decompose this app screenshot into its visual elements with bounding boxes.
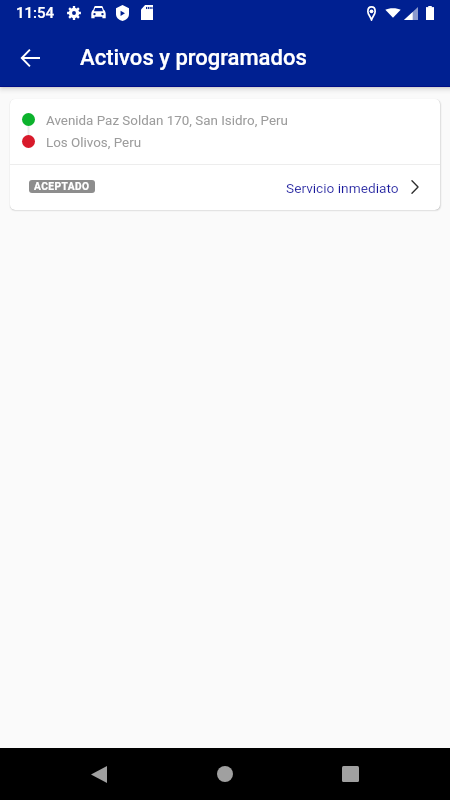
staticText: 11:54 bbox=[16, 4, 55, 22]
button[interactable]: Back bbox=[72, 748, 126, 800]
button[interactable]: ACEPTADO bbox=[29, 180, 95, 193]
button[interactable]: Recent apps bbox=[323, 748, 377, 800]
button[interactable]: Avenida Paz Soldan 170, San Isidro, Peru bbox=[10, 99, 440, 210]
staticText: Activos y programados bbox=[80, 45, 307, 71]
staticText: Avenida Paz Soldan 170, San Isidro, Peru bbox=[46, 113, 288, 129]
button[interactable]: Home bbox=[198, 748, 252, 800]
staticText: Servicio inmediato bbox=[286, 180, 399, 196]
staticText: ACEPTADO bbox=[34, 181, 90, 193]
button[interactable]: Servicio inmediato bbox=[286, 180, 419, 196]
staticText: Los Olivos, Peru bbox=[46, 135, 142, 151]
button[interactable]: Back bbox=[9, 37, 51, 79]
